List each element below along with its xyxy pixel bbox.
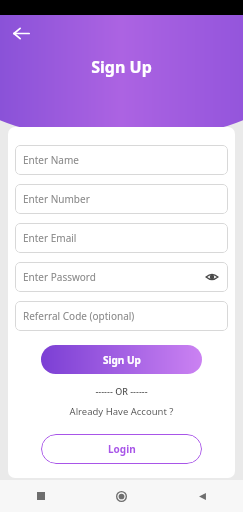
button[interactable]: Enter Name <box>15 145 228 175</box>
staticText: Enter Number <box>23 192 90 206</box>
staticText: Sign Up <box>103 353 141 367</box>
staticText: ------ OR ------ <box>15 385 228 397</box>
button[interactable]: Back <box>8 20 34 46</box>
staticText: Enter Email <box>23 231 77 245</box>
button[interactable]: Enter Number <box>15 184 228 214</box>
staticText: Already Have Account ? <box>15 405 228 418</box>
button[interactable]: Show password <box>204 269 220 285</box>
button[interactable]: Login <box>41 434 202 464</box>
staticText: Login <box>108 442 136 456</box>
button[interactable]: Enter Email <box>15 223 228 253</box>
staticText: Enter Password <box>23 270 96 284</box>
button[interactable]: Home <box>81 480 162 512</box>
button[interactable]: Back <box>162 480 243 512</box>
staticText: Sign Up <box>0 56 243 78</box>
button[interactable]: Enter Password <box>15 262 228 292</box>
button[interactable]: Referral Code (optional) <box>15 301 228 331</box>
staticText: Enter Name <box>23 153 79 167</box>
button[interactable]: Recent apps <box>0 480 81 512</box>
staticText: Referral Code (optional) <box>23 309 135 323</box>
button[interactable]: Sign Up <box>41 345 202 374</box>
